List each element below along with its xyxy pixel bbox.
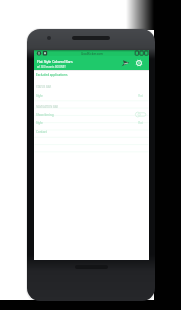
staticText: Style <box>36 121 43 125</box>
button[interactable]: Style <box>36 94 143 98</box>
staticText: NAVIGATION BAR <box>36 105 59 109</box>
staticText: Flat <box>138 121 143 125</box>
staticText: Flat <box>138 94 143 98</box>
button[interactable]: Excluded applications <box>36 73 68 77</box>
button[interactable]: Contact <box>36 130 47 134</box>
button[interactable] <box>121 59 130 67</box>
staticText: w/ 300 events BOOM!!! <box>37 65 66 69</box>
staticText: Show timing <box>36 113 54 117</box>
staticText: STATUS BAR <box>36 85 52 89</box>
staticText: Flat Style Colored Bars <box>37 59 73 64</box>
button[interactable]: Show timing <box>36 112 146 117</box>
staticText: GoalKicker.com <box>81 52 103 56</box>
button[interactable] <box>135 59 143 67</box>
staticText: Style <box>36 94 43 98</box>
button[interactable]: Style <box>36 121 143 125</box>
